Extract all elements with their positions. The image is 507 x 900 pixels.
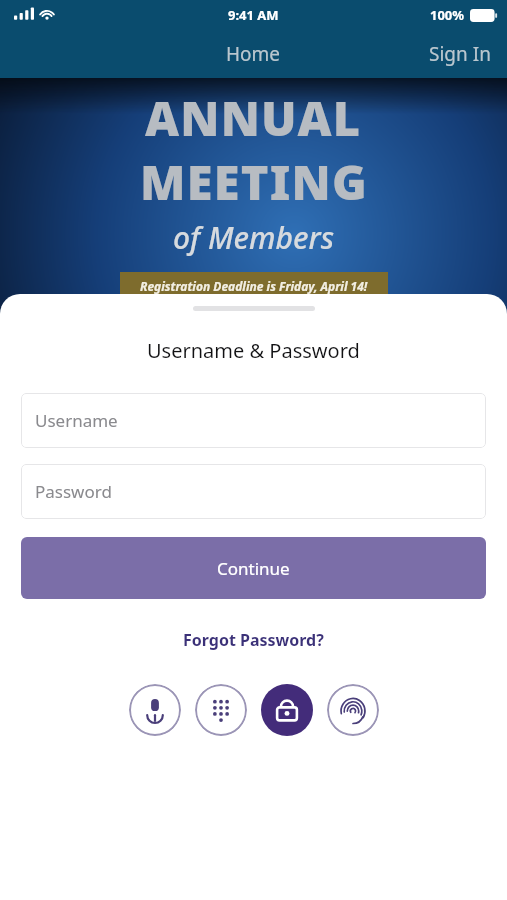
button[interactable]: Password sign in [261,684,313,736]
staticText: Continue [217,557,290,580]
button[interactable]: Username [21,393,486,448]
staticText: Username & Password [147,337,360,364]
staticText: 100% [430,6,465,24]
staticText: Forgot Password? [183,629,324,651]
staticText: Sign In [429,41,491,67]
staticText: 9:41 AM [228,6,279,24]
button[interactable]: Voice sign in [129,684,181,736]
button[interactable]: Keypad PIN [195,684,247,736]
staticText: Registration Deadline is Friday, April 1… [140,278,368,294]
staticText: Password [35,480,112,503]
button[interactable]: Password [21,464,486,519]
staticText: Username [35,409,118,432]
button[interactable]: Continue [21,537,486,599]
button[interactable]: Home [212,35,295,73]
button[interactable]: Fingerprint sign in [327,684,379,736]
staticText: ANNUAL [145,86,362,150]
button[interactable]: Forgot Password? [175,625,332,655]
staticText: MEETING [140,150,368,214]
staticText: of Members [173,217,335,258]
button[interactable]: Sign In [415,35,507,73]
staticText: Home [226,41,281,67]
